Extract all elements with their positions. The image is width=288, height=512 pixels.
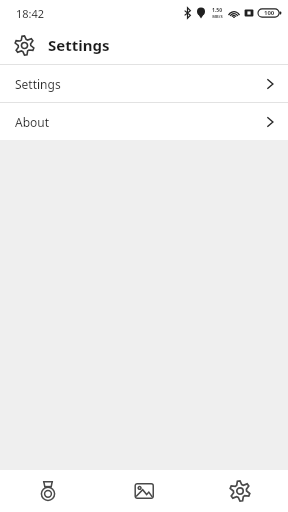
staticText: 18:42 (16, 6, 45, 21)
staticText: Settings (48, 35, 110, 55)
staticText: About (15, 114, 50, 130)
staticText: MB/S (212, 14, 223, 19)
button[interactable]: Settings (0, 65, 288, 102)
staticText: Settings (15, 76, 61, 92)
button[interactable]: Gallery (96, 470, 192, 512)
staticText: 1.50 (212, 7, 222, 14)
button[interactable]: Settings (192, 470, 288, 512)
staticText: 100 (264, 9, 275, 17)
button[interactable]: About (0, 103, 288, 140)
button[interactable]: Awards (0, 470, 96, 512)
